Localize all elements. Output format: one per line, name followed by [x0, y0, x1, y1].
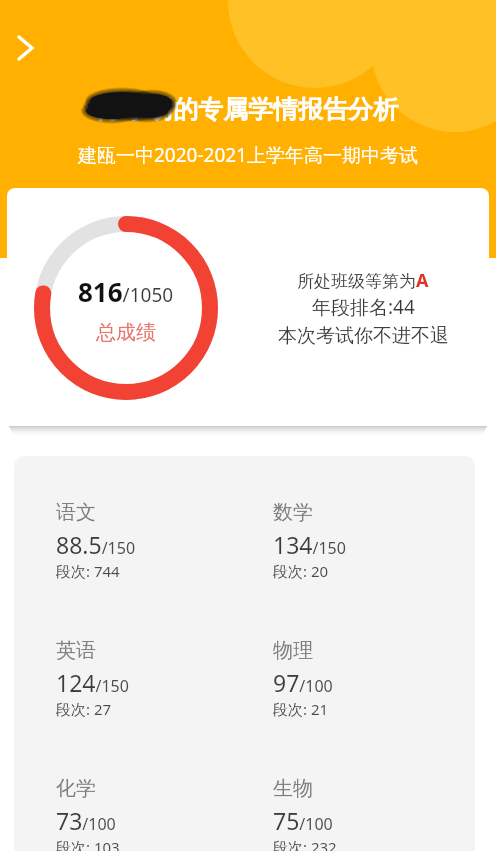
staticText: 化学 — [56, 776, 96, 801]
staticText: 语文 — [56, 500, 96, 525]
button[interactable]: 化学 — [56, 776, 256, 851]
staticText: 124/150 — [56, 667, 129, 698]
staticText: 生物 — [273, 776, 313, 801]
button[interactable]: 生物 — [273, 776, 473, 851]
button[interactable]: 数学 — [273, 500, 473, 581]
staticText: 段次: 21 — [273, 699, 329, 719]
staticText: 总成绩 — [96, 320, 156, 345]
staticText: 段次: 232 — [273, 837, 337, 851]
staticText: 段次: 20 — [273, 561, 329, 581]
staticText: 88.5/150 — [56, 529, 136, 560]
button[interactable]: Back — [7, 30, 43, 66]
staticText: 本次考试你不进不退 — [278, 324, 449, 348]
staticText: 陈小明的专属学情报告分析 — [98, 94, 398, 125]
staticText: 75/100 — [273, 805, 333, 836]
button[interactable]: 物理 — [273, 638, 473, 719]
staticText: 段次: 103 — [56, 837, 120, 851]
staticText: 数学 — [273, 500, 313, 525]
staticText: 段次: 744 — [56, 561, 120, 581]
button[interactable]: 语文 — [56, 500, 256, 581]
staticText: 134/150 — [273, 529, 346, 560]
staticText: 英语 — [56, 638, 96, 663]
staticText: 段次: 27 — [56, 699, 112, 719]
staticText: 建瓯一中2020-2021上学年高一期中考试 — [78, 142, 419, 168]
staticText: 所处班级等第为A — [297, 268, 429, 293]
staticText: 97/100 — [273, 667, 333, 698]
button[interactable]: 英语 — [56, 638, 256, 719]
staticText: 物理 — [273, 638, 313, 663]
staticText: 816/1050 — [78, 274, 174, 309]
staticText: 年段排名:44 — [312, 294, 415, 320]
staticText: 73/100 — [56, 805, 116, 836]
